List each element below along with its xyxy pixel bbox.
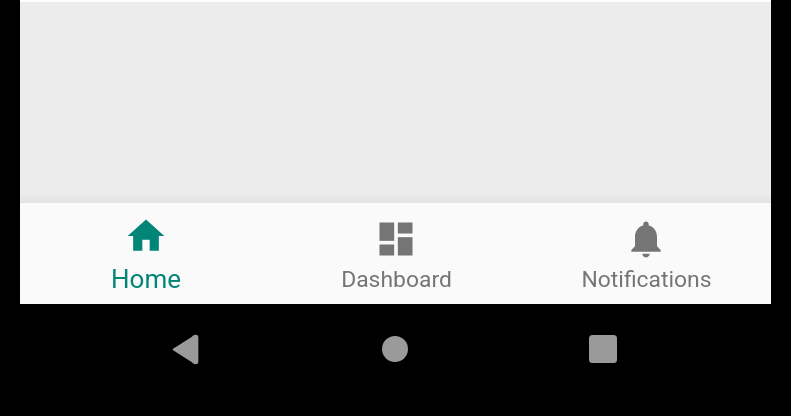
- button[interactable]: Home: [364, 318, 426, 380]
- button[interactable]: Home: [20, 203, 271, 304]
- button[interactable]: Back: [155, 318, 217, 380]
- staticText: Home: [111, 264, 181, 294]
- staticText: Dashboard: [341, 266, 452, 293]
- button[interactable]: Recent apps: [572, 318, 634, 380]
- button[interactable]: Notifications: [521, 203, 771, 304]
- staticText: Notifications: [581, 266, 712, 293]
- button[interactable]: Dashboard: [271, 203, 521, 304]
